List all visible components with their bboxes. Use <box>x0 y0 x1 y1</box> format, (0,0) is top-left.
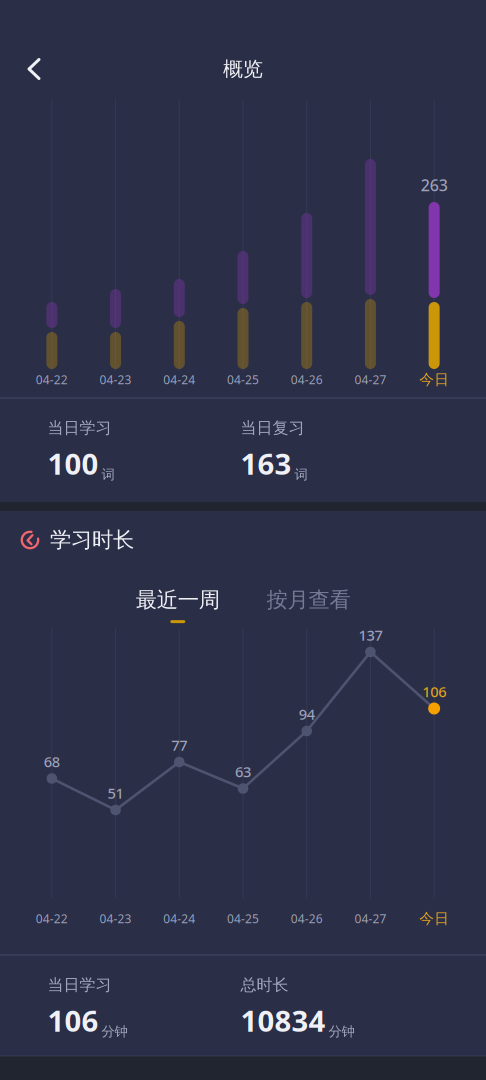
staticText: 今日 <box>419 909 449 927</box>
staticText: 10834 <box>240 1001 325 1040</box>
staticText: 263 <box>421 174 448 196</box>
button[interactable]: Back <box>7 42 61 96</box>
staticText: 04-23 <box>100 910 132 926</box>
staticText: 04-22 <box>36 371 68 387</box>
staticText: 最近一周 <box>136 587 220 613</box>
staticText: 137 <box>358 625 382 645</box>
staticText: 04-24 <box>163 371 195 387</box>
staticText: 04-22 <box>36 910 68 926</box>
staticText: 学习时长 <box>50 527 134 553</box>
staticText: 今日 <box>419 370 449 388</box>
staticText: 163 <box>240 444 291 483</box>
staticText: 04-27 <box>354 910 386 926</box>
staticText: 04-26 <box>291 371 323 387</box>
staticText: 04-25 <box>227 910 259 926</box>
staticText: 106 <box>422 682 446 701</box>
staticText: 概览 <box>223 57 263 81</box>
staticText: 按月查看 <box>266 587 350 613</box>
staticText: 04-27 <box>354 371 386 387</box>
staticText: 分钟 <box>101 1023 127 1040</box>
staticText: 词 <box>294 466 307 483</box>
staticText: 当日学习 <box>47 975 111 995</box>
staticText: 04-25 <box>227 371 259 387</box>
staticText: 77 <box>171 735 187 755</box>
staticText: 106 <box>47 1001 98 1040</box>
staticText: 当日学习 <box>47 418 111 438</box>
staticText: 词 <box>101 466 114 483</box>
staticText: 63 <box>235 762 251 781</box>
button[interactable]: 最近一周 <box>126 579 230 629</box>
staticText: 分钟 <box>328 1023 354 1040</box>
staticText: 当日复习 <box>240 418 304 438</box>
staticText: 68 <box>44 752 60 771</box>
staticText: 总时长 <box>240 975 288 995</box>
button[interactable]: 按月查看 <box>256 579 360 629</box>
staticText: 100 <box>47 444 98 483</box>
staticText: 94 <box>299 704 315 724</box>
staticText: 04-26 <box>291 910 323 926</box>
staticText: 04-23 <box>100 371 132 387</box>
staticText: 04-24 <box>163 910 195 926</box>
staticText: 51 <box>108 783 124 803</box>
